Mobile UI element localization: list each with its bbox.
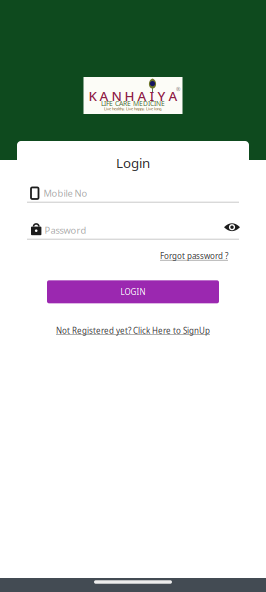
staticText: Live healthy. Live happy. Live long.: [104, 106, 162, 111]
staticText: Login: [116, 154, 150, 172]
button[interactable]: Forgot password ?: [160, 251, 228, 261]
staticText: Not Registered yet? Click Here to SignUp: [56, 325, 210, 336]
staticText: Password: [44, 224, 86, 236]
staticText: Mobile No: [43, 187, 87, 199]
staticText: LOGIN: [120, 286, 145, 297]
staticText: Forgot password ?: [160, 251, 228, 261]
staticText: ®: [176, 86, 180, 93]
button[interactable]: Show password: [224, 225, 240, 236]
button[interactable]: Not Registered yet? Click Here to SignUp: [56, 325, 210, 336]
button[interactable]: LOGIN: [47, 280, 219, 303]
staticText: K A N H A I Y A: [88, 87, 177, 105]
staticText: LIFE CARE MEDICINE: [101, 99, 165, 108]
